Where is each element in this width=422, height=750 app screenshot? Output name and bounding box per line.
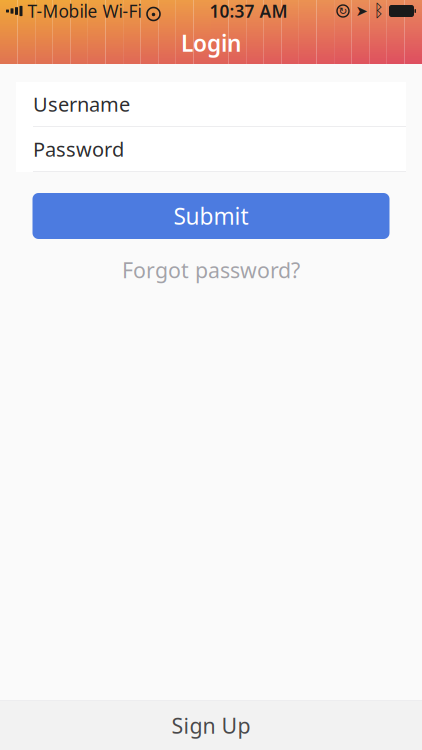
staticText: Forgot password? — [122, 256, 300, 284]
staticText: ↻ — [338, 5, 347, 17]
staticText: 10:37 AM — [209, 0, 287, 22]
staticText: Username — [33, 91, 130, 117]
staticText: ➤ — [355, 3, 367, 19]
staticText: Submit — [173, 201, 248, 231]
staticText: T-Mobile Wi-Fi — [22, 0, 141, 22]
button[interactable]: Submit — [32, 193, 389, 239]
button[interactable]: Forgot password? — [32, 258, 389, 282]
staticText: Login — [181, 28, 241, 58]
staticText: Sign Up — [171, 711, 250, 740]
button[interactable]: Sign Up — [0, 701, 422, 750]
staticText: Password — [33, 136, 124, 162]
staticText: ᛒ — [373, 2, 383, 19]
